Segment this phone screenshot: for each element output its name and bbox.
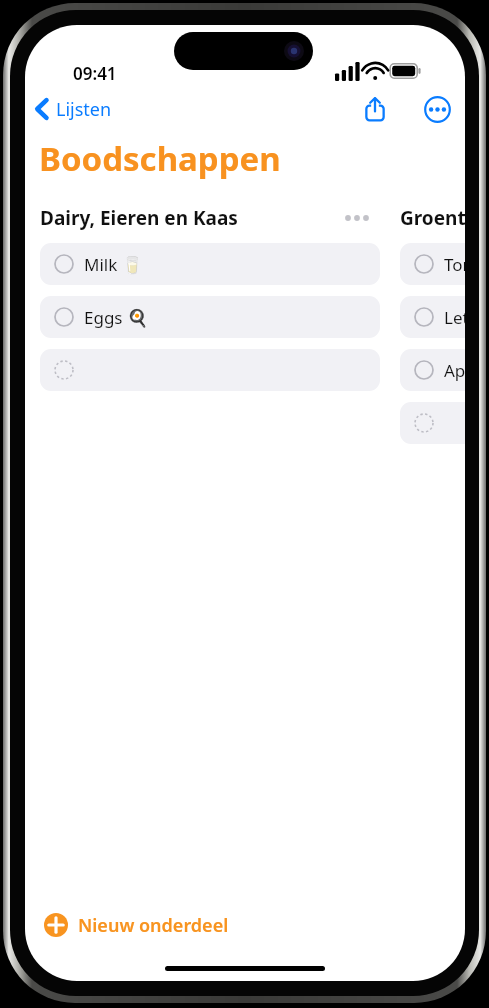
staticText: Boodschappen — [39, 136, 281, 181]
button[interactable]: Apples 🍎 — [400, 349, 465, 391]
button[interactable]: Lettuce 🥬 — [400, 296, 465, 338]
button[interactable] — [400, 402, 465, 444]
button[interactable]: Eggs 🍳 — [40, 296, 380, 338]
button[interactable]: Deel — [354, 88, 396, 130]
button[interactable]: Tomatoes 🍅 — [400, 243, 465, 285]
staticText: Lettuce 🥬 — [444, 306, 465, 329]
button[interactable]: Milk 🥛 — [40, 243, 380, 285]
staticText: 09:41 — [73, 62, 117, 85]
staticText: Milk 🥛 — [84, 253, 143, 276]
button[interactable]: Meer — [416, 88, 458, 130]
staticText: Eggs 🍳 — [84, 306, 149, 329]
staticText: Lijsten — [56, 97, 112, 122]
button[interactable]: Nieuw onderdeel — [44, 906, 229, 944]
button[interactable]: Lijsten — [35, 91, 112, 127]
staticText: Nieuw onderdeel — [78, 913, 229, 938]
staticText: Dairy, Eieren en Kaas — [40, 205, 238, 231]
staticText: Groenten en Fruit — [400, 205, 465, 231]
staticText: Apples 🍎 — [444, 359, 465, 382]
staticText: Tomatoes 🍅 — [444, 253, 465, 276]
button[interactable]: Sectieopties — [340, 203, 374, 233]
